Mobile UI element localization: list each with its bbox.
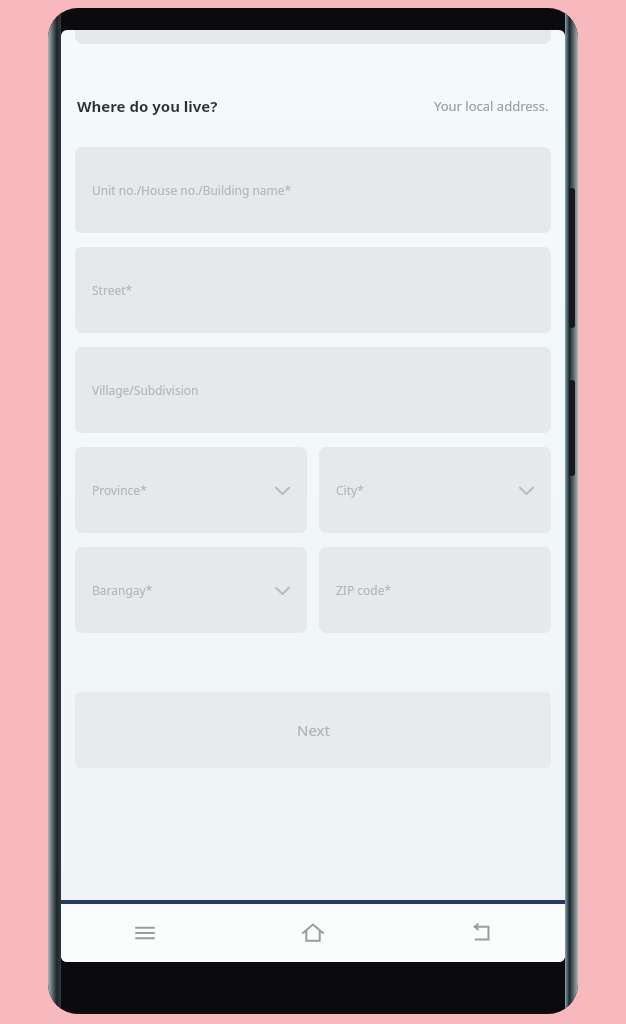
button[interactable]: Unit no./House no./Building name* [75,147,551,233]
staticText: Barangay* [92,582,153,598]
staticText: ZIP code* [336,582,392,598]
staticText: Your local address. [434,97,549,115]
button[interactable]: Province* [75,447,307,533]
button[interactable]: Barangay* [75,547,307,633]
staticText: Where do you live? [77,96,218,116]
button[interactable]: City* [319,447,551,533]
staticText: Unit no./House no./Building name* [92,182,292,198]
button[interactable]: Home [229,904,397,962]
staticText: Village/Subdivision [92,382,199,398]
staticText: Next [297,720,330,740]
button[interactable]: Village/Subdivision [75,347,551,433]
button[interactable]: Back [397,904,565,962]
button[interactable]: Recent apps [61,904,229,962]
staticText: City* [336,482,364,498]
staticText: Province* [92,482,147,498]
button[interactable]: ZIP code* [319,547,551,633]
staticText: Street* [92,282,133,298]
